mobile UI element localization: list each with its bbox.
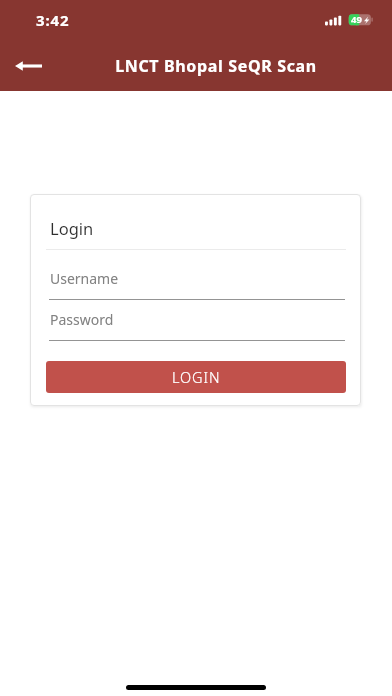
staticText: LOGIN xyxy=(172,367,221,387)
staticText: 3:42 xyxy=(36,10,70,30)
button[interactable]: Back xyxy=(4,48,52,84)
staticText: Login xyxy=(50,217,94,239)
staticText: 49 xyxy=(351,13,362,26)
staticText: LNCT Bhopal SeQR Scan xyxy=(56,55,376,77)
staticText: Password xyxy=(50,310,114,329)
staticText: Username xyxy=(50,269,119,288)
button[interactable]: LOGIN xyxy=(46,361,346,393)
